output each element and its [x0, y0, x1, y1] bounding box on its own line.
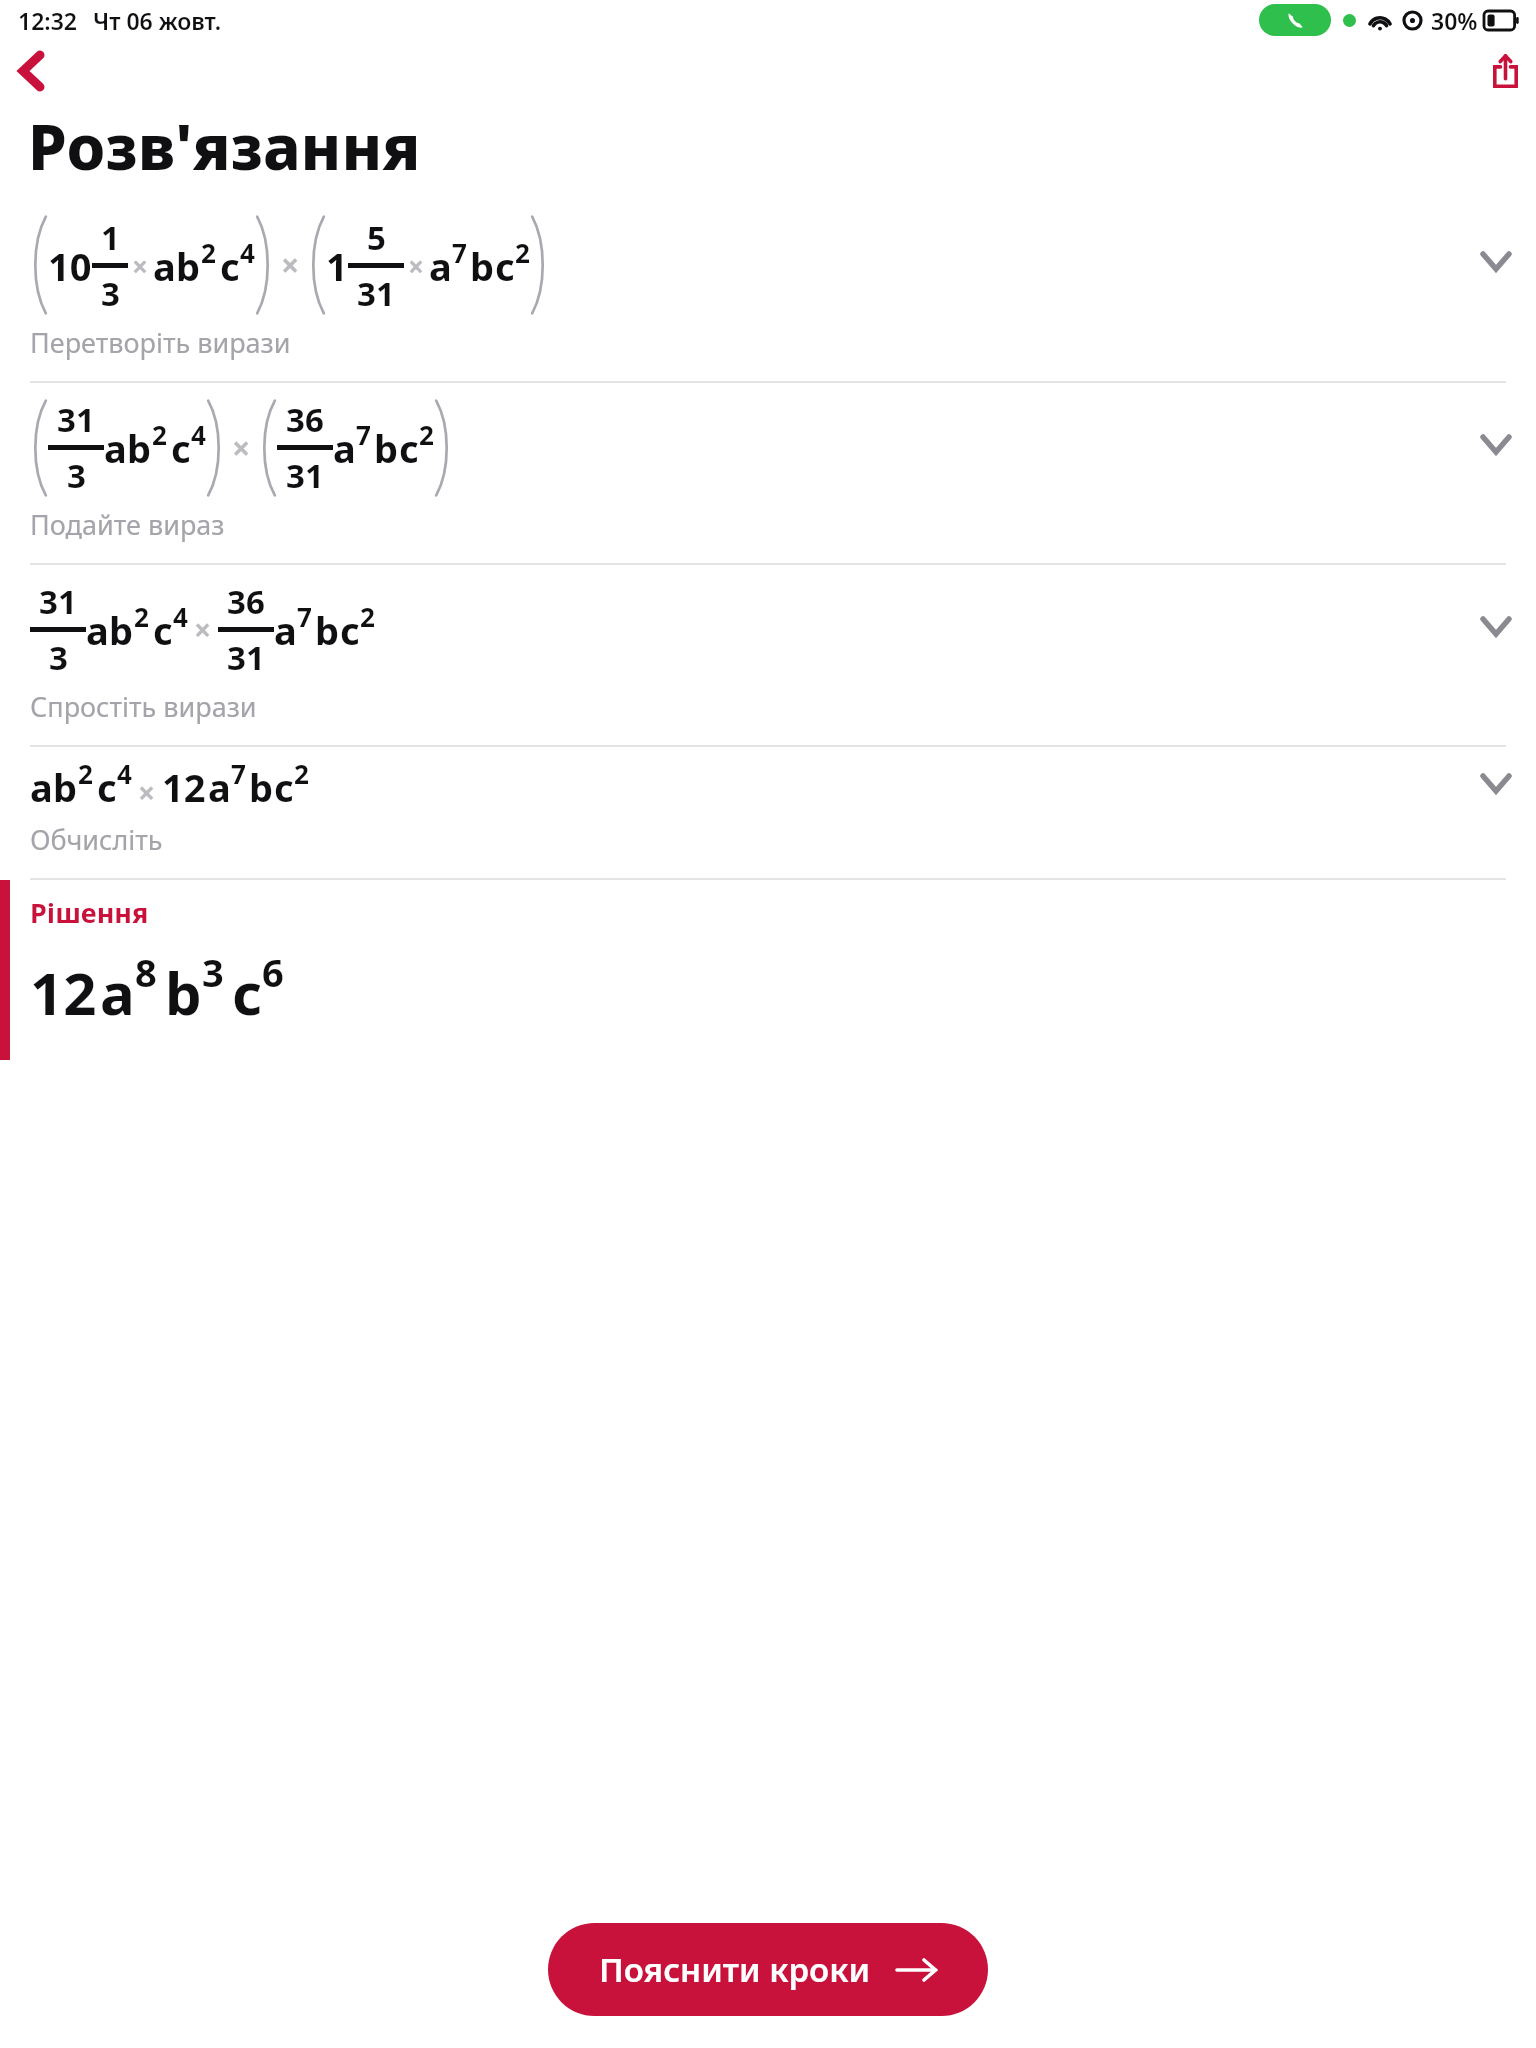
staticText: Пояснити кроки: [599, 1947, 871, 1992]
staticText: c: [495, 240, 515, 292]
staticText: 2: [78, 756, 93, 791]
staticText: 4: [117, 756, 132, 791]
staticText: 1: [101, 215, 120, 260]
staticText: c: [340, 604, 360, 656]
staticText: 7: [297, 599, 312, 634]
staticText: 3: [101, 271, 120, 316]
staticText: b: [315, 604, 340, 656]
staticText: 36: [286, 397, 324, 442]
staticText: a: [429, 240, 452, 292]
staticText: 36: [227, 579, 265, 624]
staticText: 2: [134, 599, 149, 634]
staticText: 3: [67, 453, 86, 498]
button[interactable]: Expand step: [1474, 761, 1518, 805]
staticText: 2: [515, 235, 530, 270]
staticText: 2: [419, 417, 434, 452]
staticText: a: [153, 240, 176, 292]
staticText: 3: [202, 946, 224, 998]
staticText: ×: [138, 772, 156, 813]
button[interactable]: 31: [0, 565, 1536, 686]
staticText: b: [53, 761, 78, 813]
staticText: 4: [173, 599, 188, 634]
staticText: c: [232, 953, 262, 1032]
staticText: b: [176, 240, 201, 292]
staticText: b: [165, 953, 202, 1032]
staticText: a: [333, 422, 356, 474]
staticText: ×: [194, 609, 212, 650]
staticText: Обчисліть: [30, 821, 163, 858]
staticText: 7: [452, 235, 467, 270]
staticText: 31: [227, 635, 265, 680]
staticText: 12: [162, 761, 206, 813]
staticText: Перетворіть вирази: [30, 324, 291, 361]
button[interactable]: Back: [0, 40, 62, 102]
staticText: a: [208, 761, 231, 813]
staticText: ×: [132, 247, 149, 285]
staticText: 5: [367, 215, 386, 260]
staticText: 2: [360, 599, 375, 634]
staticText: b: [470, 240, 495, 292]
staticText: c: [399, 422, 419, 474]
staticText: Розв'язання: [28, 104, 421, 188]
staticText: 12:32: [18, 5, 77, 36]
staticText: c: [220, 240, 240, 292]
staticText: c: [97, 761, 117, 813]
staticText: 1: [326, 240, 348, 292]
staticText: a: [86, 604, 109, 656]
staticText: 7: [356, 417, 371, 452]
staticText: a: [100, 953, 135, 1032]
staticText: 10: [48, 240, 92, 292]
staticText: a: [274, 604, 297, 656]
staticText: ×: [408, 247, 425, 285]
staticText: 31: [286, 453, 324, 498]
staticText: 8: [135, 946, 157, 998]
staticText: 31: [357, 271, 395, 316]
staticText: 30%: [1431, 5, 1478, 36]
staticText: 12: [30, 953, 97, 1032]
staticText: Спростіть вирази: [30, 688, 257, 725]
staticText: Рішення: [30, 894, 149, 931]
button[interactable]: Пояснити кроки: [548, 1923, 988, 2016]
staticText: 2: [201, 235, 216, 270]
staticText: 3: [49, 635, 68, 680]
staticText: c: [153, 604, 173, 656]
button[interactable]: a: [0, 747, 1536, 819]
staticText: a: [104, 422, 127, 474]
staticText: ×: [232, 426, 251, 470]
staticText: c: [274, 761, 294, 813]
button[interactable]: Expand step: [1474, 422, 1518, 466]
button[interactable]: 31: [0, 383, 1536, 504]
staticText: c: [171, 422, 191, 474]
button[interactable]: Expand step: [1474, 604, 1518, 648]
staticText: 2: [152, 417, 167, 452]
staticText: 31: [57, 397, 95, 442]
staticText: ×: [281, 243, 300, 287]
staticText: Чт 06 жовт.: [93, 5, 222, 36]
staticText: Подайте вираз: [30, 506, 225, 543]
staticText: 4: [240, 235, 255, 270]
staticText: 6: [262, 946, 284, 998]
button[interactable]: Share: [1474, 40, 1536, 102]
staticText: b: [109, 604, 134, 656]
staticText: 7: [231, 756, 246, 791]
button[interactable]: 10: [0, 200, 1536, 322]
staticText: b: [249, 761, 274, 813]
staticText: a: [30, 761, 53, 813]
staticText: b: [127, 422, 152, 474]
staticText: 31: [39, 579, 77, 624]
staticText: 2: [294, 756, 309, 791]
button[interactable]: Expand step: [1474, 239, 1518, 283]
staticText: 4: [191, 417, 206, 452]
staticText: b: [374, 422, 399, 474]
